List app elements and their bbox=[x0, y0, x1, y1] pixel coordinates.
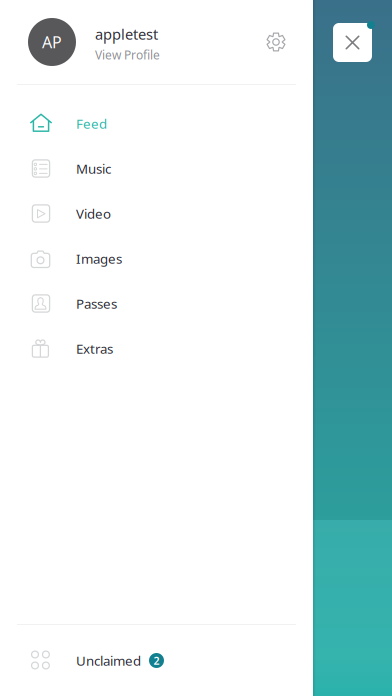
button[interactable]: Images bbox=[0, 236, 313, 281]
button[interactable]: Unclaimed bbox=[0, 625, 313, 696]
button[interactable]: Music bbox=[0, 146, 313, 191]
staticText: Feed bbox=[76, 115, 107, 132]
button[interactable]: Extras bbox=[0, 326, 313, 371]
staticText: Video bbox=[76, 205, 111, 222]
staticText: Passes bbox=[76, 295, 117, 312]
button[interactable]: Close bbox=[333, 23, 372, 62]
staticText: AP bbox=[42, 31, 62, 53]
button[interactable]: Passes bbox=[0, 281, 313, 326]
staticText: View Profile bbox=[95, 47, 160, 63]
staticText: appletest bbox=[95, 24, 158, 44]
staticText: Music bbox=[76, 160, 111, 177]
button[interactable]: Video bbox=[0, 191, 313, 236]
staticText: Images bbox=[76, 250, 122, 267]
button[interactable]: Settings bbox=[260, 26, 292, 58]
staticText: Unclaimed bbox=[76, 652, 141, 669]
button[interactable]: Feed bbox=[0, 101, 313, 146]
staticText: 2 bbox=[153, 653, 159, 668]
staticText: Extras bbox=[76, 340, 113, 357]
